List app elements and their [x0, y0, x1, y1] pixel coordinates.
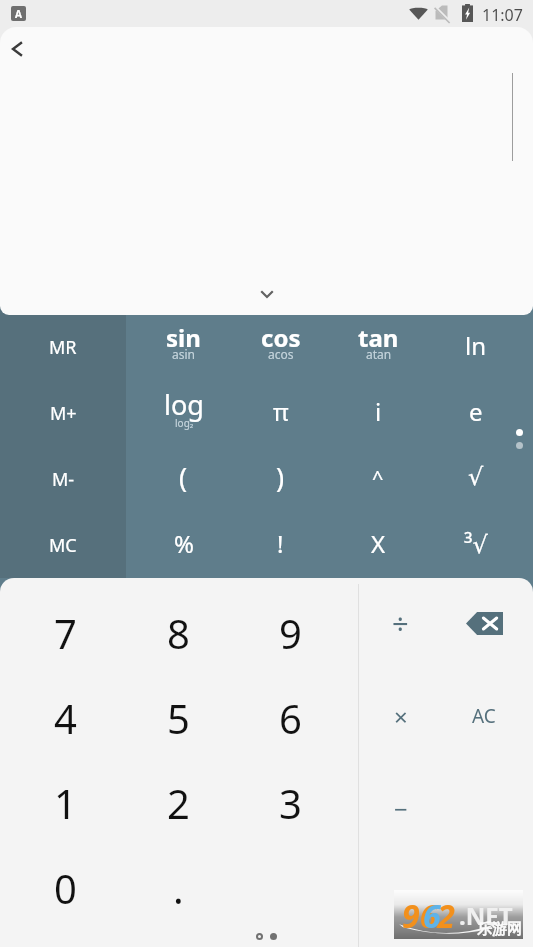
- staticText: −: [394, 792, 408, 825]
- staticText: tan: [358, 321, 399, 354]
- staticText: asin: [172, 346, 195, 362]
- button[interactable]: M-: [0, 446, 126, 512]
- staticText: π: [273, 395, 289, 428]
- staticText: .: [173, 861, 184, 915]
- button[interactable]: Collapse panel: [251, 279, 282, 310]
- staticText: ×: [394, 700, 408, 733]
- staticText: log: [164, 386, 204, 423]
- staticText: 1: [54, 776, 77, 830]
- button[interactable]: √: [427, 444, 525, 510]
- staticText: ln: [465, 329, 487, 362]
- button[interactable]: (: [135, 444, 232, 510]
- staticText: X: [371, 527, 386, 560]
- staticText: 6: [279, 691, 302, 745]
- staticText: +: [394, 884, 408, 917]
- staticText: 2: [167, 776, 190, 830]
- staticText: ): [276, 459, 285, 496]
- button[interactable]: 9: [234, 590, 346, 675]
- staticText: =: [477, 884, 491, 917]
- button[interactable]: ln: [427, 313, 525, 378]
- button[interactable]: sin: [135, 313, 232, 378]
- staticText: √: [468, 463, 484, 491]
- button[interactable]: 2: [122, 760, 234, 845]
- button[interactable]: e: [427, 378, 525, 444]
- button[interactable]: 1: [9, 760, 122, 845]
- button[interactable]: ÷: [359, 578, 442, 670]
- button[interactable]: tan: [329, 313, 427, 378]
- button[interactable]: ^: [329, 444, 427, 510]
- staticText: i: [375, 395, 382, 428]
- staticText: ^: [372, 464, 384, 491]
- button[interactable]: Backspace: [442, 578, 526, 670]
- staticText: M+: [50, 401, 77, 426]
- button[interactable]: Back: [2, 34, 32, 64]
- staticText: ÷: [392, 604, 409, 643]
- button[interactable]: 3: [234, 760, 346, 845]
- button[interactable]: ³√: [427, 510, 525, 576]
- button[interactable]: 8: [122, 590, 234, 675]
- staticText: 6: [423, 894, 441, 938]
- staticText: 3: [279, 776, 302, 830]
- button[interactable]: =: [442, 854, 526, 946]
- button[interactable]: MR: [0, 315, 126, 380]
- staticText: 0: [54, 861, 77, 915]
- staticText: .NET: [459, 899, 513, 932]
- button[interactable]: cos: [232, 313, 329, 378]
- button[interactable]: −: [359, 762, 442, 854]
- staticText: !: [277, 527, 284, 560]
- staticText: 11:07: [482, 4, 523, 26]
- button[interactable]: 4: [9, 675, 122, 760]
- button[interactable]: ×: [359, 670, 442, 762]
- staticText: acos: [268, 346, 294, 362]
- staticText: log₂: [175, 416, 194, 430]
- button[interactable]: %: [135, 510, 232, 576]
- button[interactable]: M+: [0, 380, 126, 446]
- staticText: M-: [52, 467, 75, 492]
- staticText: MC: [49, 533, 77, 558]
- staticText: cos: [261, 321, 301, 354]
- staticText: 5: [167, 691, 190, 745]
- button[interactable]: 0: [9, 845, 122, 930]
- button[interactable]: !: [232, 510, 329, 576]
- staticText: ³√: [464, 527, 488, 560]
- staticText: 7: [54, 606, 77, 660]
- staticText: sin: [166, 321, 201, 354]
- button[interactable]: .: [122, 845, 234, 930]
- staticText: 乐游网: [477, 920, 522, 939]
- staticText: A: [15, 7, 22, 21]
- staticText: AC: [472, 703, 496, 729]
- button[interactable]: X: [329, 510, 427, 576]
- staticText: e: [469, 395, 483, 428]
- staticText: 9: [279, 606, 302, 660]
- button[interactable]: i: [329, 378, 427, 444]
- staticText: 4: [54, 691, 77, 745]
- button[interactable]: π: [232, 378, 329, 444]
- staticText: 962: [402, 894, 455, 938]
- button[interactable]: 6: [234, 675, 346, 760]
- button[interactable]: 7: [9, 590, 122, 675]
- staticText: %: [174, 527, 194, 560]
- button[interactable]: MC: [0, 512, 126, 578]
- button[interactable]: +: [359, 854, 442, 946]
- button[interactable]: AC: [442, 670, 526, 762]
- staticText: (: [179, 459, 188, 496]
- button[interactable]: 5: [122, 675, 234, 760]
- button[interactable]: log: [135, 378, 232, 444]
- staticText: MR: [49, 335, 77, 360]
- button[interactable]: ): [232, 444, 329, 510]
- staticText: 8: [167, 606, 190, 660]
- staticText: atan: [366, 346, 392, 362]
